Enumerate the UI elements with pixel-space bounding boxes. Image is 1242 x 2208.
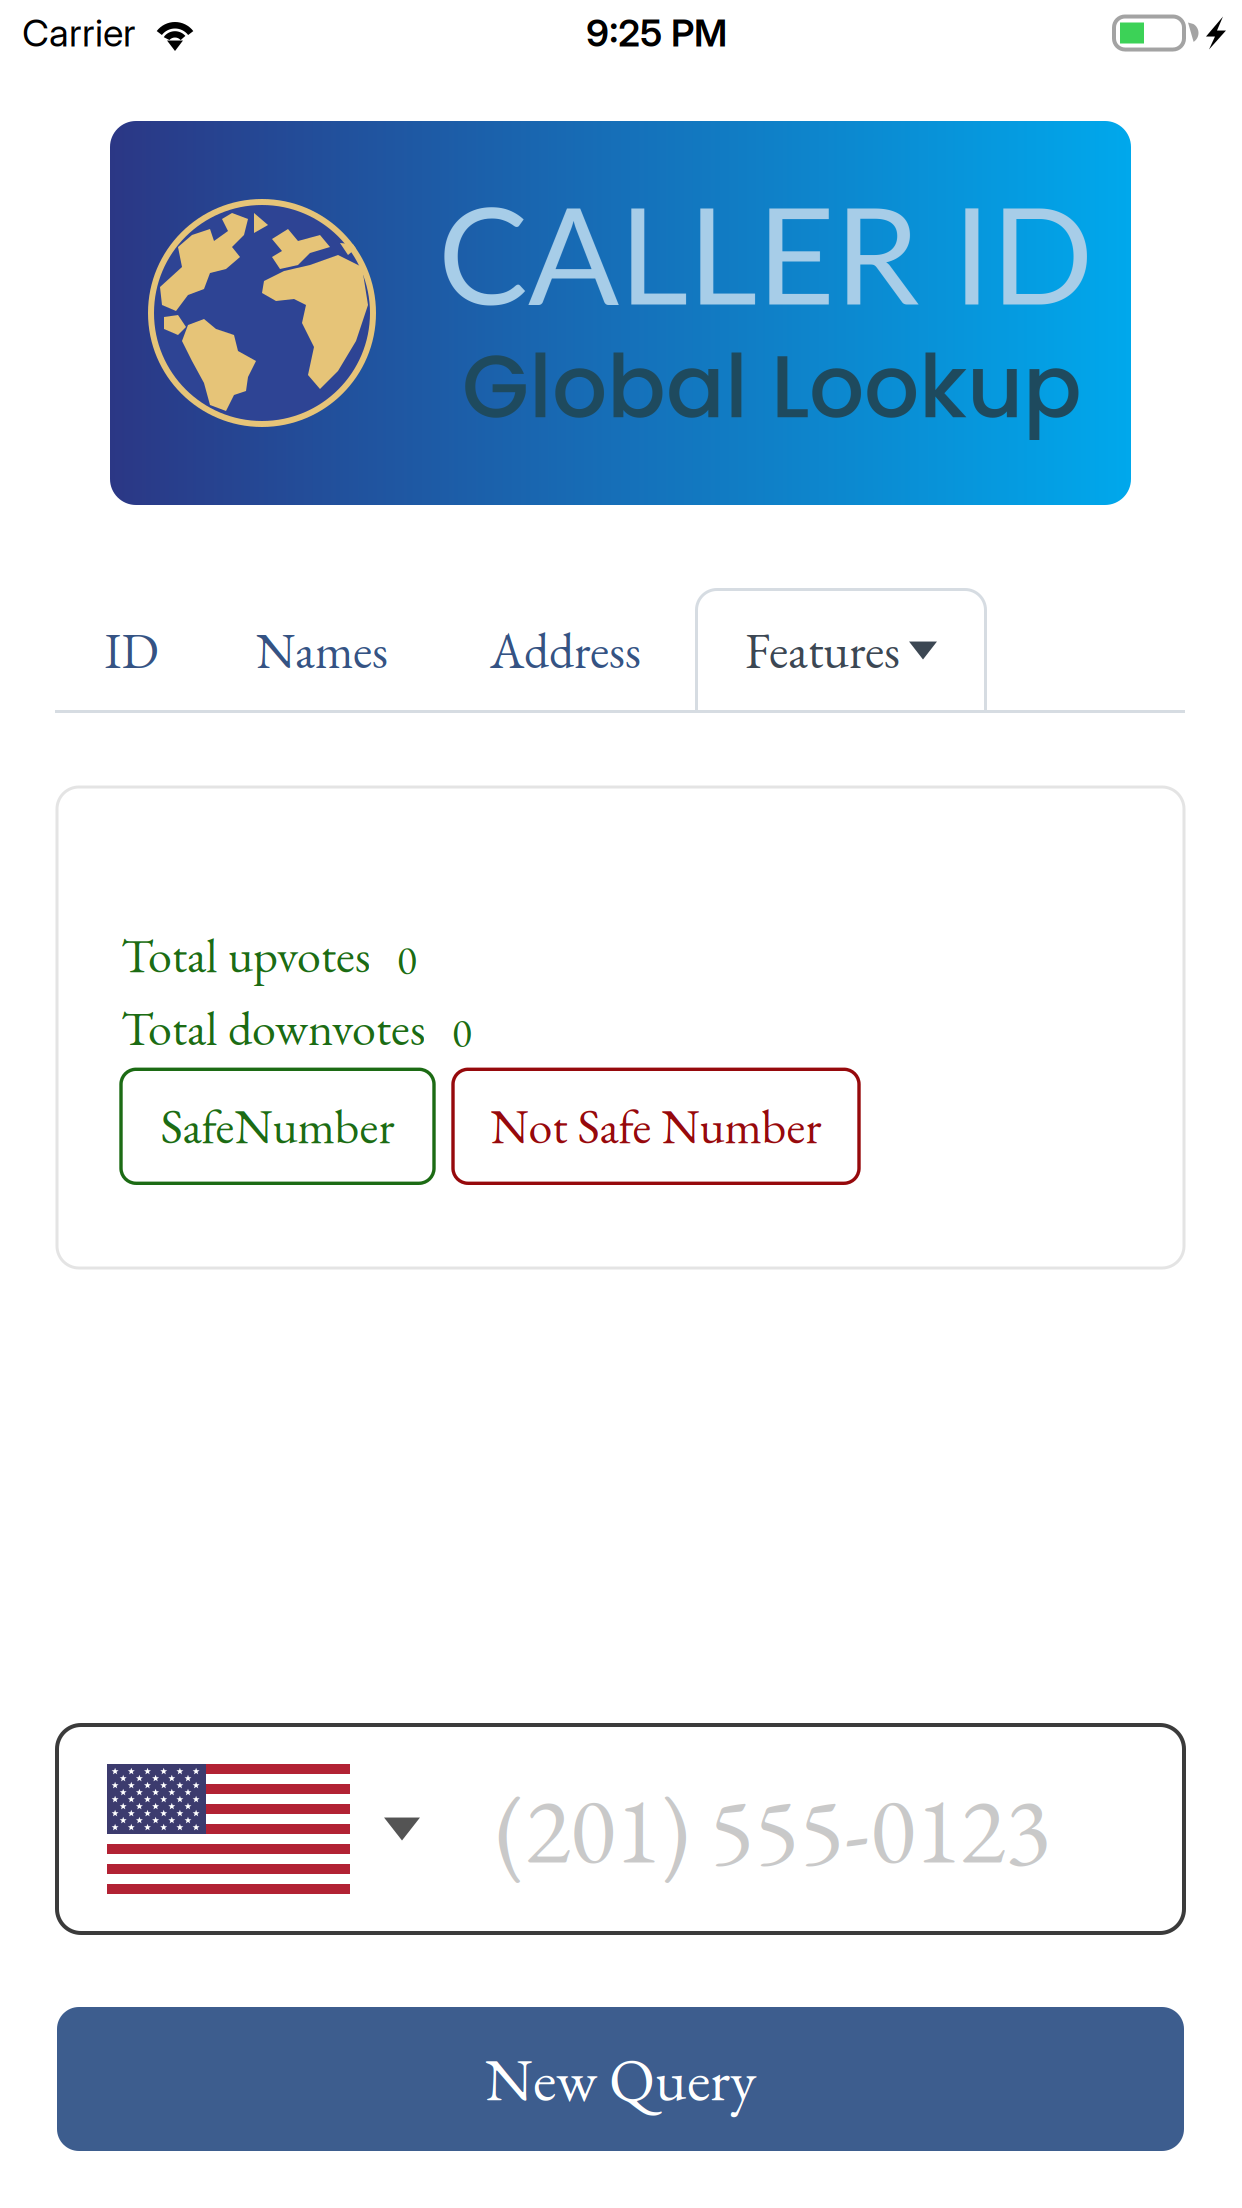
button[interactable]: Not Safe Number: [453, 1069, 859, 1183]
button[interactable]: SafeNumber: [121, 1069, 434, 1183]
staticText: Total upvotes: [121, 924, 371, 987]
staticText: Not Safe Number: [490, 1095, 821, 1158]
staticText: New Query: [485, 2040, 756, 2118]
staticText: Total downvotes: [121, 997, 426, 1059]
staticText: Global Lookup: [462, 326, 1082, 447]
staticText: ID: [104, 618, 158, 683]
staticText: 9:25 PM: [586, 10, 727, 56]
button[interactable]: Address: [436, 588, 695, 713]
staticText: Names: [256, 618, 388, 683]
staticText: CALLER ID: [438, 171, 1093, 333]
staticText: 0: [452, 1005, 472, 1059]
staticText: Features: [745, 618, 900, 683]
button[interactable]: Features: [695, 588, 987, 713]
staticText: SafeNumber: [160, 1095, 394, 1158]
staticText: (201) 555-0123: [495, 1767, 1050, 1891]
button[interactable]: New Query: [57, 2007, 1184, 2151]
staticText: Address: [490, 618, 641, 683]
staticText: 0: [397, 933, 417, 987]
staticText: Carrier: [22, 10, 135, 56]
button[interactable]: Names: [208, 588, 436, 713]
button[interactable]: ID: [55, 588, 208, 713]
